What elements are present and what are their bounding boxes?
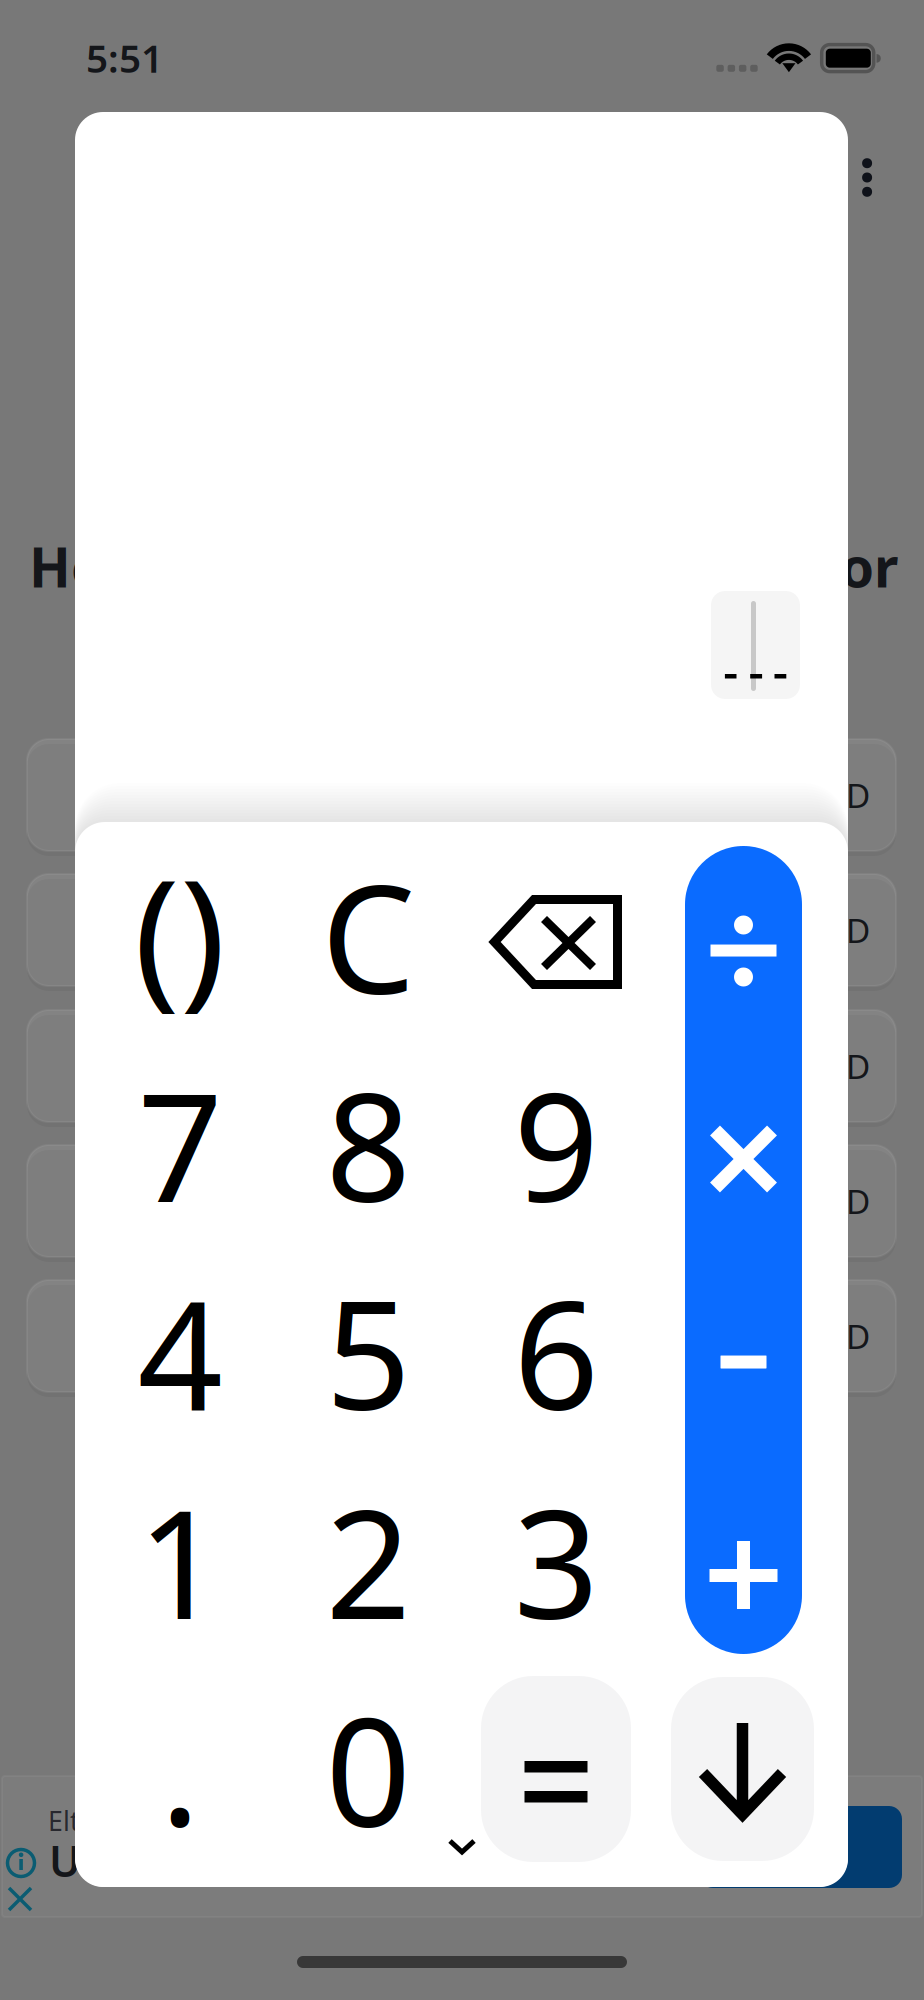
staticText: 3 — [513, 1462, 598, 1660]
staticText: 0 — [325, 1670, 410, 1868]
button[interactable]: Equals — [481, 1676, 631, 1862]
button[interactable]: Divide — [685, 850, 802, 1052]
button[interactable]: Calculate — [700, 1806, 902, 1888]
button[interactable]: 1 — [87, 1457, 273, 1665]
button[interactable]: 7 — [87, 1040, 273, 1248]
staticText: 5:51 — [86, 32, 163, 83]
button[interactable]: 0 — [275, 1665, 461, 1873]
button[interactable]: () — [87, 827, 273, 1035]
staticText: USD — [804, 1314, 870, 1358]
staticText: 5 — [325, 1253, 410, 1451]
button[interactable]: 5 — [275, 1248, 461, 1456]
button[interactable]: 3 — [463, 1457, 649, 1665]
staticText: Home Loan Eligibility Calculator — [29, 530, 898, 603]
staticText: . — [160, 1669, 200, 1867]
button[interactable]: Multiply — [685, 1058, 802, 1260]
staticText: 8 — [325, 1045, 410, 1243]
staticText: 4 — [137, 1253, 222, 1451]
button[interactable]: 6 — [463, 1248, 649, 1456]
button[interactable]: 9 — [463, 1040, 649, 1248]
button[interactable]: 2 — [275, 1457, 461, 1665]
staticText: 7 — [137, 1045, 222, 1243]
button[interactable]: Subtract — [685, 1261, 802, 1463]
staticText: USD — [804, 1044, 870, 1088]
button[interactable]: 4 — [87, 1248, 273, 1456]
button[interactable]: USD — [27, 1145, 896, 1257]
button[interactable]: . — [87, 1664, 273, 1872]
button[interactable]: 8 — [275, 1040, 461, 1248]
button[interactable]: USD — [27, 739, 896, 851]
staticText: Elter Sie — [48, 1803, 150, 1838]
button[interactable]: Done — [671, 1677, 814, 1861]
button[interactable]: More options — [848, 144, 886, 211]
staticText: USD 500 000 — [49, 1832, 301, 1889]
staticText: USD — [804, 1179, 870, 1223]
button[interactable]: Information — [0, 1846, 42, 1880]
staticText: 9 — [513, 1045, 598, 1243]
button[interactable]: USD — [27, 1280, 896, 1392]
button[interactable]: Add — [685, 1474, 802, 1676]
button[interactable]: Collapse keypad — [432, 1822, 492, 1872]
button[interactable]: C — [275, 832, 461, 1040]
staticText: USD — [804, 773, 870, 817]
button[interactable]: Delete — [463, 838, 649, 1046]
staticText: 6 — [513, 1253, 598, 1451]
staticText: C — [321, 837, 415, 1035]
staticText: USD — [804, 908, 870, 952]
staticText: 1 — [137, 1462, 222, 1660]
button[interactable]: USD — [27, 874, 896, 986]
button[interactable]: USD — [27, 1010, 896, 1122]
staticText: () — [134, 830, 226, 1032]
button[interactable]: Dismiss — [0, 1884, 42, 1914]
staticText: 2 — [325, 1462, 410, 1660]
